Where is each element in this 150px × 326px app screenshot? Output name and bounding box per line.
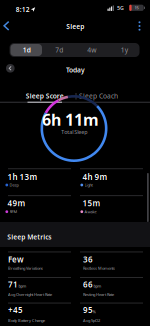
staticText: Body Battery Change (8, 318, 45, 323)
button[interactable]: Back (2, 20, 12, 32)
staticText: Sleep Metrics (7, 232, 51, 241)
staticText: Restless Moments (83, 265, 115, 271)
staticText: 6h 11m (42, 109, 99, 130)
staticText: Sleep (66, 22, 84, 31)
staticText: Sleep Coach (79, 92, 118, 100)
staticText: bpm (93, 283, 101, 289)
staticText: 15 (134, 5, 138, 10)
button[interactable]: 7d (43, 43, 75, 57)
button[interactable]: 1y (108, 43, 140, 57)
staticText: 4w (87, 46, 96, 54)
staticText: +45 (8, 305, 23, 315)
button[interactable]: Sleep Coach (64, 89, 134, 102)
staticText: 95 (83, 305, 93, 315)
staticText: 1y (121, 46, 128, 54)
staticText: 66 (83, 279, 93, 290)
staticText: 1d (23, 46, 31, 54)
staticText: bpm (18, 283, 26, 289)
staticText: 71 (8, 279, 18, 290)
staticText: 36 (83, 254, 93, 265)
staticText: 5G (117, 4, 124, 12)
button[interactable]: More options (135, 20, 144, 32)
staticText: % (92, 309, 95, 314)
staticText: 15m (82, 198, 100, 208)
staticText: Avg SpO2 (83, 318, 100, 323)
staticText: Few (8, 254, 24, 265)
staticText: Light (85, 182, 93, 188)
button[interactable]: Previous day (6, 64, 15, 73)
staticText: Avg Overnight Heart Rate (8, 292, 52, 297)
staticText: 7d (55, 46, 63, 54)
staticText: REM (10, 209, 18, 214)
button[interactable]: Sleep Score (10, 89, 80, 102)
staticText: Breathing Variations (8, 265, 43, 271)
staticText: Resting Heart Rate (83, 292, 114, 297)
staticText: 1h 13m (7, 171, 37, 182)
staticText: 4h 9m (82, 171, 107, 182)
staticText: 8:12 (16, 5, 30, 14)
button[interactable]: 4w (75, 43, 108, 57)
staticText: Sleep Score (26, 92, 64, 100)
staticText: Today (66, 66, 85, 74)
staticText: Deep (10, 182, 19, 188)
staticText: Awake (85, 209, 97, 214)
staticText: Total Sleep (61, 128, 87, 136)
button[interactable]: 1d (10, 43, 43, 57)
staticText: 49m (7, 198, 25, 208)
